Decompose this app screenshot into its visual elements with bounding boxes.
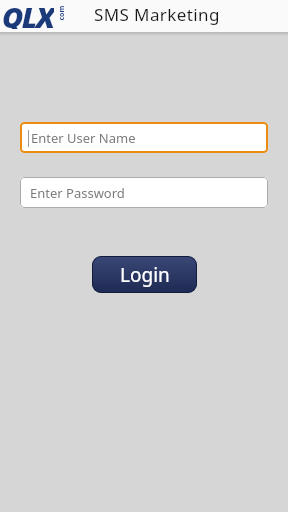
staticText: QLX [2, 0, 54, 29]
button[interactable]: Login [92, 256, 197, 293]
staticText: Enter User Name [31, 129, 136, 147]
staticText: SMS Marketing [94, 3, 220, 26]
button[interactable]: Enter User Name [20, 122, 268, 153]
staticText: Enter Password [30, 184, 125, 202]
button[interactable]: Enter Password [20, 177, 268, 208]
staticText: Login [120, 262, 170, 288]
staticText: com [56, 5, 66, 20]
